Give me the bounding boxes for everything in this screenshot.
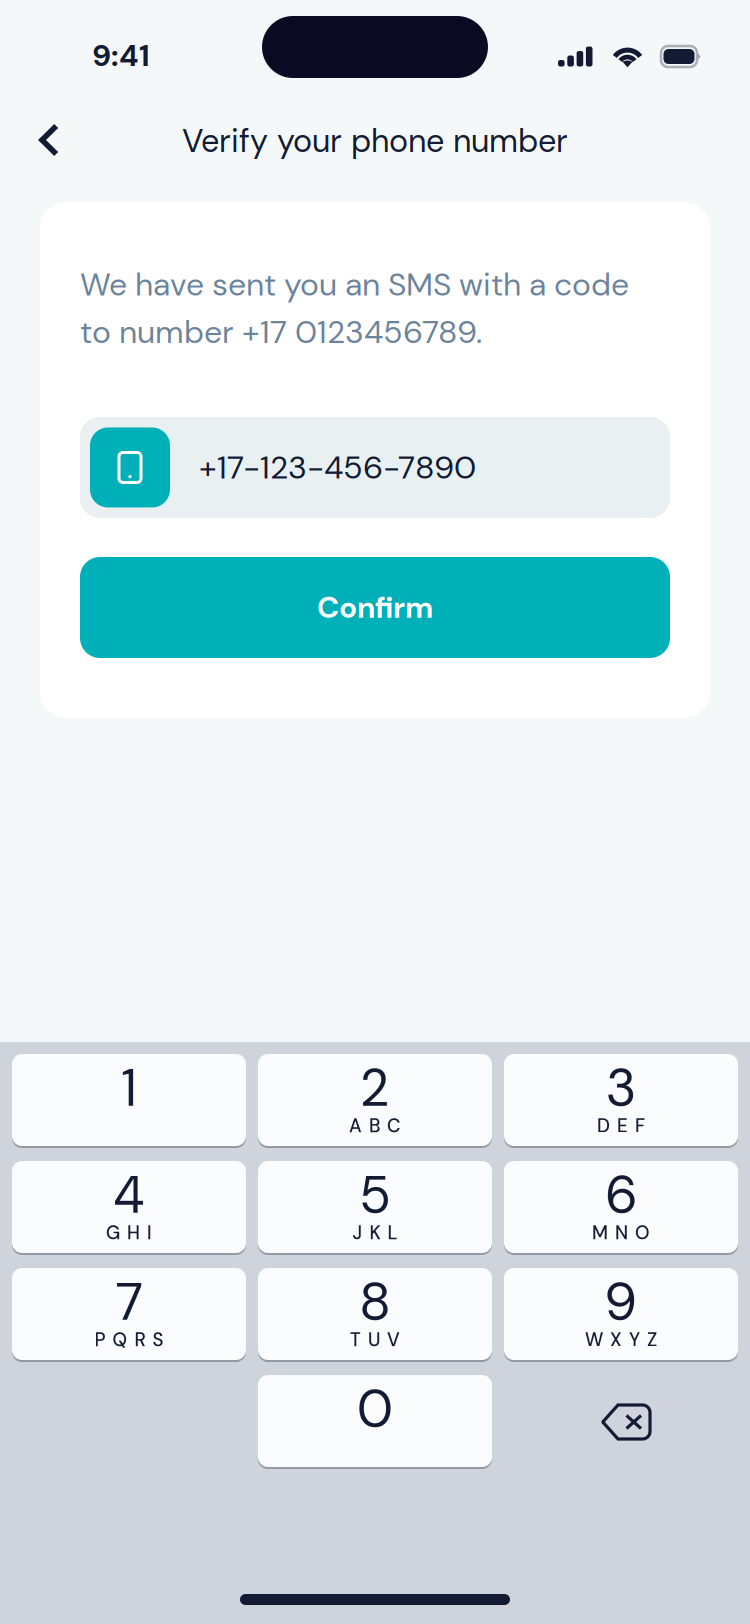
button[interactable]: 4 [12, 1161, 246, 1255]
staticText: 8 [360, 1268, 389, 1336]
button[interactable]: Confirm [80, 557, 670, 658]
button[interactable]: 6 [504, 1161, 738, 1255]
staticText: DEF [597, 1114, 645, 1138]
button[interactable]: 2 [258, 1054, 492, 1148]
staticText: +17-123-456-7890 [199, 447, 476, 488]
button[interactable]: Delete [504, 1375, 738, 1469]
button[interactable]: 7 [12, 1268, 246, 1362]
staticText: 5 [361, 1161, 389, 1229]
staticText: Confirm [317, 588, 433, 627]
staticText: 7 [115, 1268, 142, 1336]
staticText: 1 [122, 1054, 136, 1122]
staticText: 9:41 [92, 36, 150, 75]
staticText: TUV [350, 1328, 400, 1352]
staticText: 2 [361, 1054, 388, 1122]
staticText: 0 [357, 1375, 392, 1443]
button[interactable]: 0 [258, 1375, 492, 1469]
staticText: 9 [606, 1268, 636, 1336]
button[interactable]: 5 [258, 1161, 492, 1255]
staticText: 6 [606, 1161, 636, 1229]
staticText: JKL [352, 1221, 397, 1245]
staticText: We have sent you an SMS with a code to n… [80, 264, 629, 353]
staticText: MNO [592, 1221, 650, 1245]
staticText: 4 [113, 1161, 144, 1229]
button[interactable]: 9 [504, 1268, 738, 1362]
staticText: WXYZ [585, 1328, 657, 1352]
button[interactable]: 1 [12, 1054, 246, 1148]
staticText: ABC [349, 1114, 401, 1138]
button[interactable]: Back [12, 103, 86, 177]
staticText: PQRS [94, 1328, 163, 1352]
button[interactable]: 8 [258, 1268, 492, 1362]
staticText: Verify your phone number [182, 120, 568, 162]
staticText: 3 [606, 1054, 635, 1122]
button[interactable]: 3 [504, 1054, 738, 1148]
staticText: GHI [106, 1221, 152, 1245]
